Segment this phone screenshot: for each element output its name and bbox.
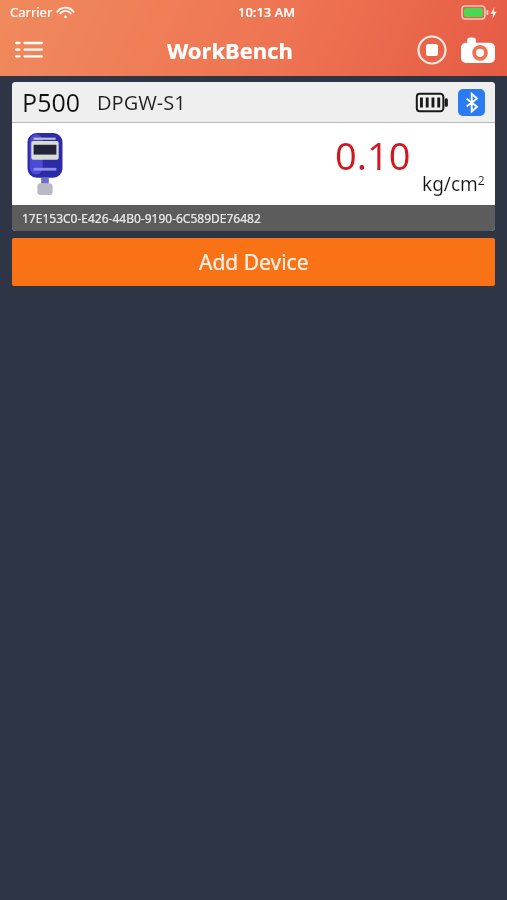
staticText: kg/cm2 — [422, 171, 485, 197]
staticText: 0.10 — [335, 129, 411, 181]
other: Bluetooth connected — [458, 89, 485, 116]
button[interactable]: Menu — [6, 27, 52, 73]
staticText: 10:13 AM — [238, 3, 296, 21]
button[interactable]: Add Device — [12, 238, 495, 286]
button[interactable]: Record — [409, 27, 455, 73]
button[interactable]: P500 — [12, 82, 495, 231]
staticText: WorkBench — [167, 35, 293, 65]
staticText: Add Device — [199, 248, 309, 277]
button[interactable]: Camera — [455, 27, 501, 73]
staticText: Carrier — [10, 3, 53, 21]
staticText: P500 — [22, 85, 81, 119]
staticText: 17E153C0-E426-44B0-9190-6C589DE76482 — [22, 210, 261, 226]
staticText: DPGW-S1 — [97, 89, 186, 116]
